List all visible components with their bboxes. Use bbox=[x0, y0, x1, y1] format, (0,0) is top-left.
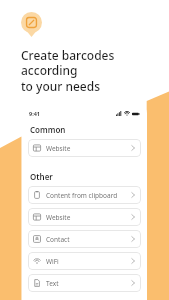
button[interactable]: Content from clipboard bbox=[28, 186, 141, 204]
other: App icon bbox=[21, 12, 42, 37]
button[interactable]: Website bbox=[28, 139, 141, 157]
staticText: Website bbox=[46, 213, 71, 222]
staticText: WiFi bbox=[46, 257, 59, 266]
staticText: Create barcodes according to your needs bbox=[21, 47, 163, 95]
button[interactable]: Contact bbox=[28, 230, 141, 248]
button[interactable]: Text bbox=[28, 274, 141, 292]
button[interactable]: Website bbox=[28, 208, 141, 226]
staticText: Text bbox=[46, 279, 59, 288]
staticText: Common bbox=[30, 124, 66, 135]
staticText: Website bbox=[46, 144, 71, 153]
staticText: Contact bbox=[46, 235, 70, 244]
staticText: Other bbox=[30, 171, 53, 182]
button[interactable]: WiFi bbox=[28, 252, 141, 270]
staticText: Content from clipboard bbox=[46, 191, 118, 200]
staticText: 9:41 bbox=[29, 110, 40, 117]
